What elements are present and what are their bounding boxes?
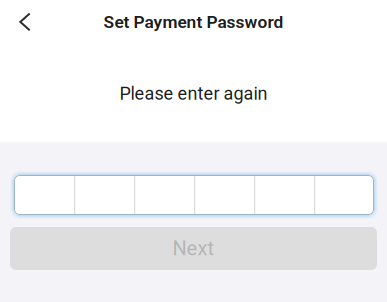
button[interactable]: Next [10,227,377,270]
button[interactable]: Back [0,1,45,43]
staticText: Set Payment Password [103,12,283,32]
staticText: Please enter again [119,83,267,104]
staticText: Next [172,237,214,260]
